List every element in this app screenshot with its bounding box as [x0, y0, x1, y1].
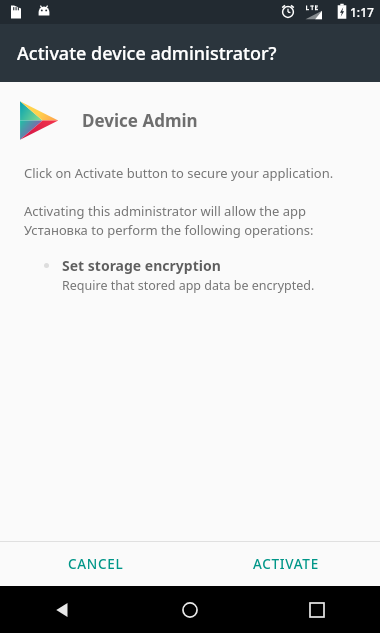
- staticText: CANCEL: [68, 555, 124, 573]
- button[interactable]: Recent apps: [253, 586, 380, 633]
- staticText: Click on Activate button to secure your …: [24, 164, 334, 182]
- staticText: Activate device administrator?: [17, 41, 277, 66]
- button[interactable]: Home: [126, 586, 253, 633]
- staticText: Require that stored app data be encrypte…: [62, 277, 315, 294]
- staticText: Activating this administrator will allow…: [24, 202, 314, 239]
- button[interactable]: Back: [0, 586, 126, 633]
- button[interactable]: CANCEL: [52, 545, 140, 583]
- staticText: Set storage encryption: [62, 256, 221, 275]
- button[interactable]: ACTIVATE: [237, 545, 335, 583]
- staticText: 1:17: [350, 4, 374, 20]
- staticText: Device Admin: [82, 109, 198, 132]
- staticText: ACTIVATE: [253, 555, 319, 573]
